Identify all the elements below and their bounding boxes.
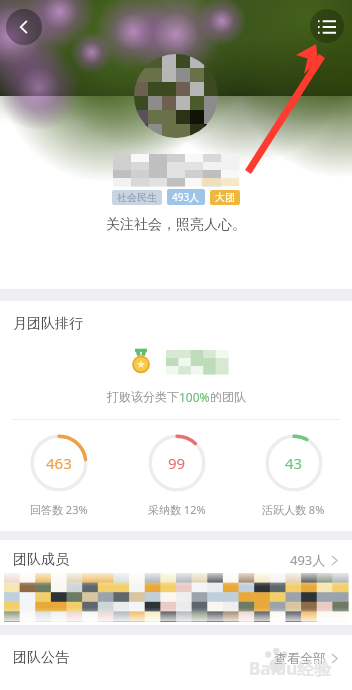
- staticText: 打败该分类下: [107, 389, 179, 404]
- button[interactable]: 团队成员: [0, 540, 352, 625]
- staticText: 的团队: [210, 389, 246, 404]
- staticText: 团队公告: [13, 649, 69, 667]
- staticText: 社会民生: [117, 191, 157, 204]
- staticText: Baidu经验: [249, 657, 332, 680]
- staticText: 99: [168, 453, 186, 473]
- staticText: 493人: [172, 190, 200, 204]
- button[interactable]: Back: [6, 9, 42, 45]
- staticText: 团队成员: [13, 551, 69, 569]
- staticText: 大团: [215, 191, 235, 204]
- staticText: 回答数 23%: [30, 502, 88, 517]
- button[interactable]: Menu: [310, 9, 344, 43]
- staticText: 43: [285, 453, 303, 473]
- staticText: 活跃人数 8%: [262, 502, 325, 517]
- button[interactable]: 团队公告: [0, 635, 352, 690]
- staticText: 关注社会，照亮人心。: [106, 216, 246, 234]
- staticText: 查看全部: [274, 650, 326, 666]
- staticText: 月团队排行: [13, 315, 83, 333]
- staticText: 463: [46, 453, 72, 473]
- staticText: 100%: [179, 389, 210, 405]
- staticText: 493人: [290, 551, 326, 569]
- staticText: 采纳数 12%: [148, 502, 206, 517]
